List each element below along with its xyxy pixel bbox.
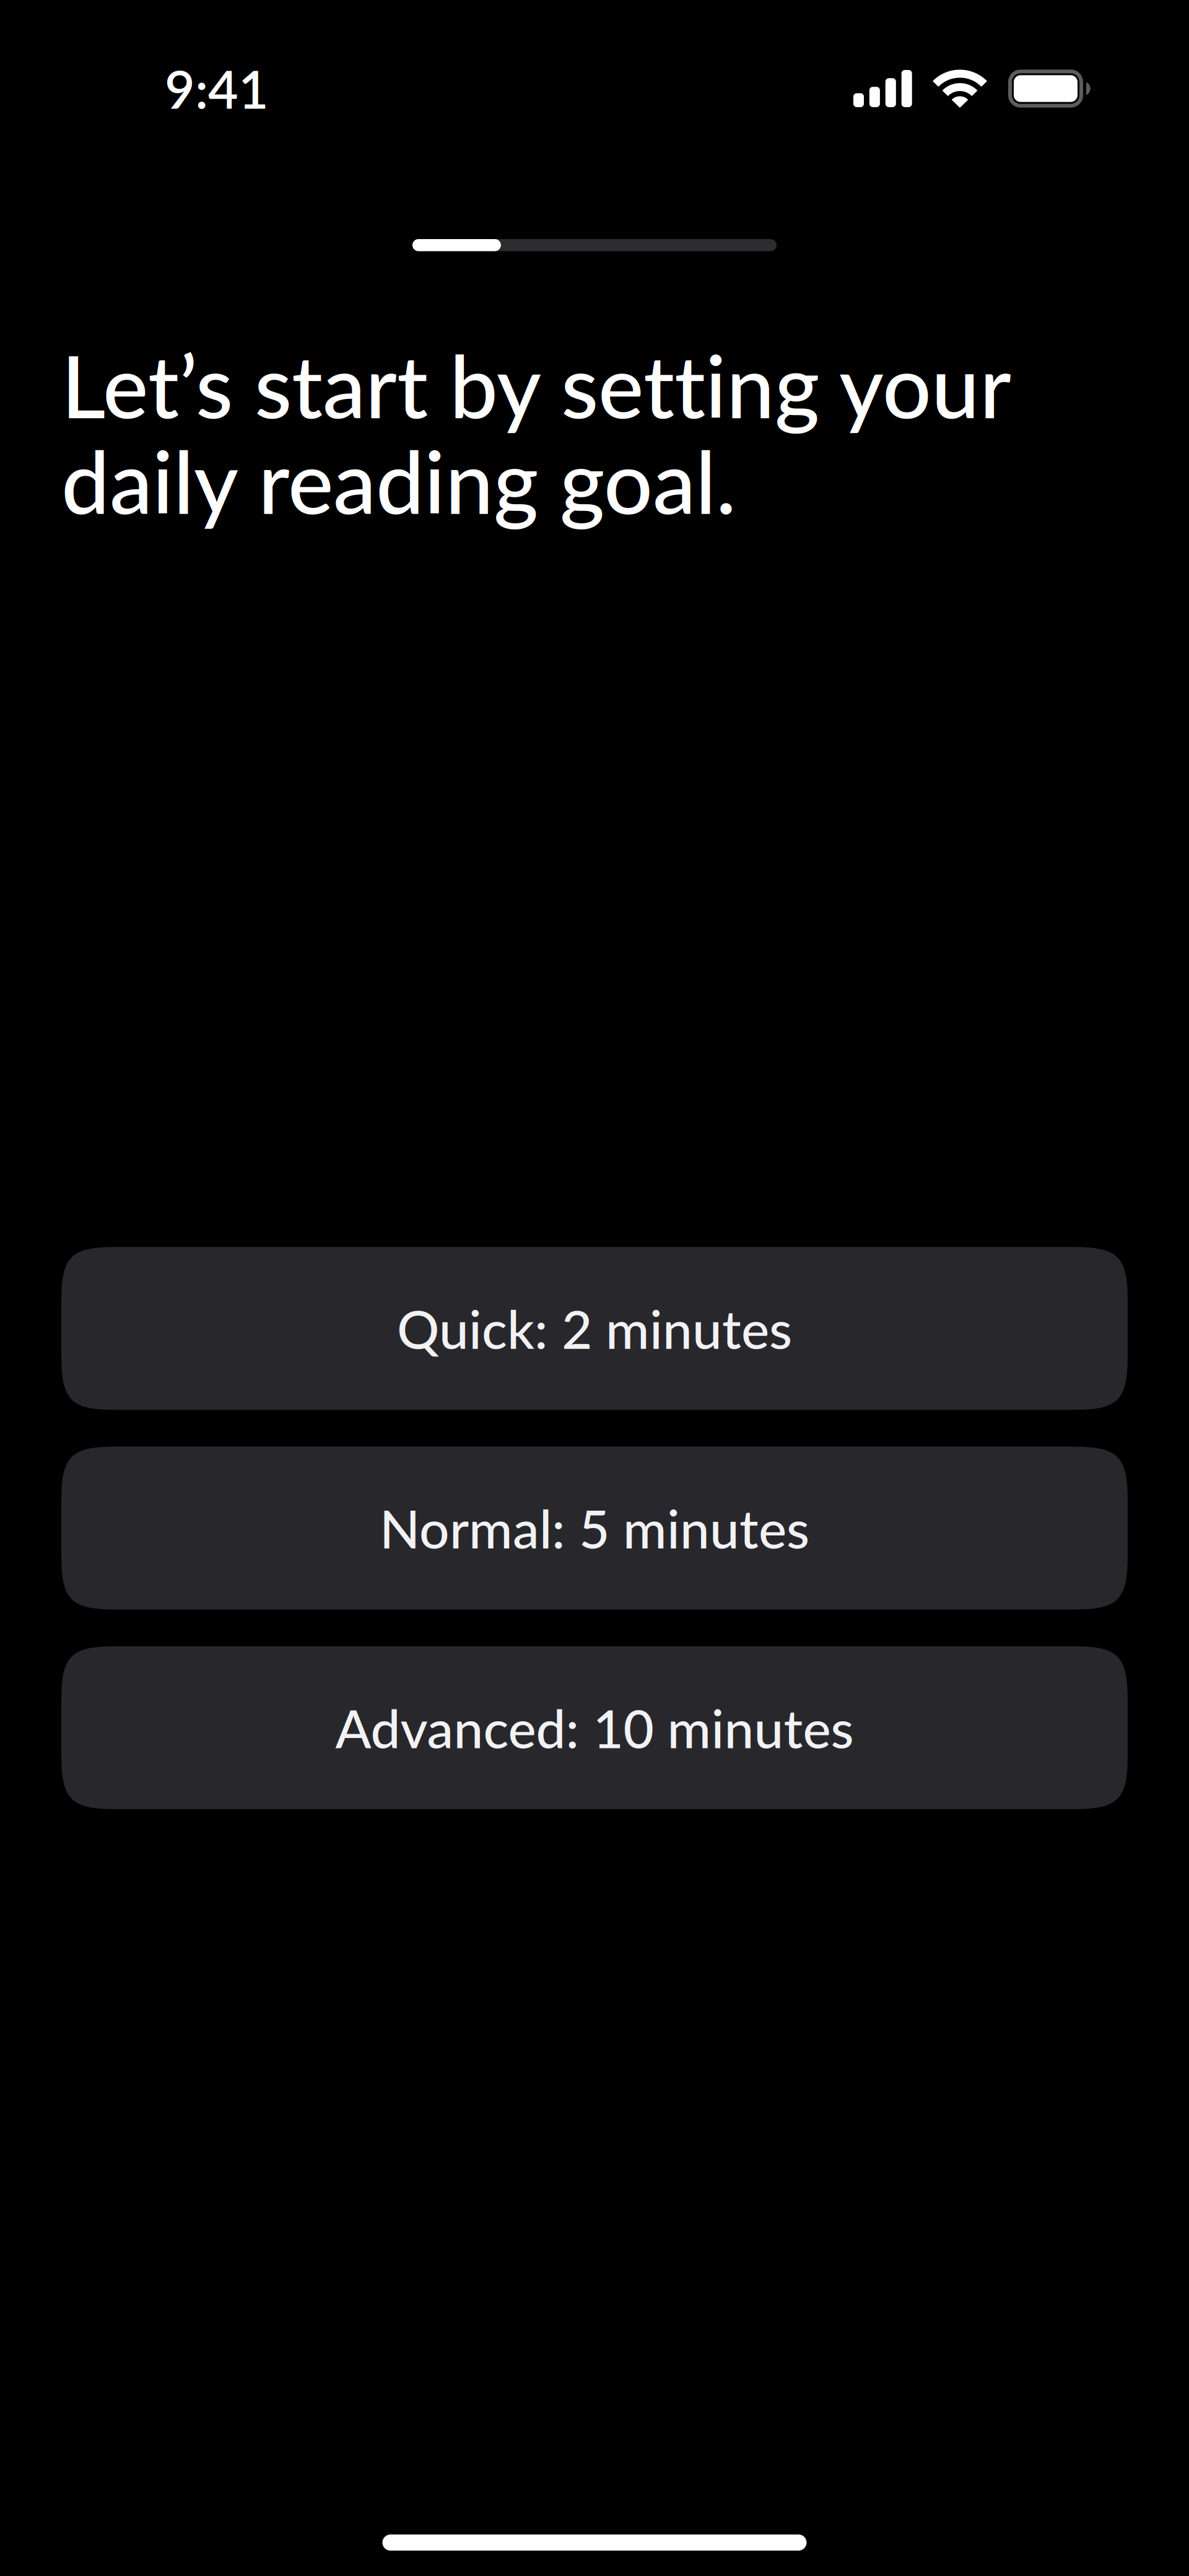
- button[interactable]: Normal: 5 minutes: [61, 1447, 1128, 1610]
- staticText: Let’s start by setting your daily readin…: [61, 334, 1009, 532]
- staticText: Normal: 5 minutes: [380, 1496, 809, 1560]
- staticText: Advanced: 10 minutes: [335, 1696, 854, 1759]
- button[interactable]: Advanced: 10 minutes: [61, 1646, 1128, 1809]
- staticText: 9:41: [165, 57, 269, 120]
- button[interactable]: Quick: 2 minutes: [61, 1247, 1128, 1410]
- staticText: Quick: 2 minutes: [397, 1297, 792, 1360]
